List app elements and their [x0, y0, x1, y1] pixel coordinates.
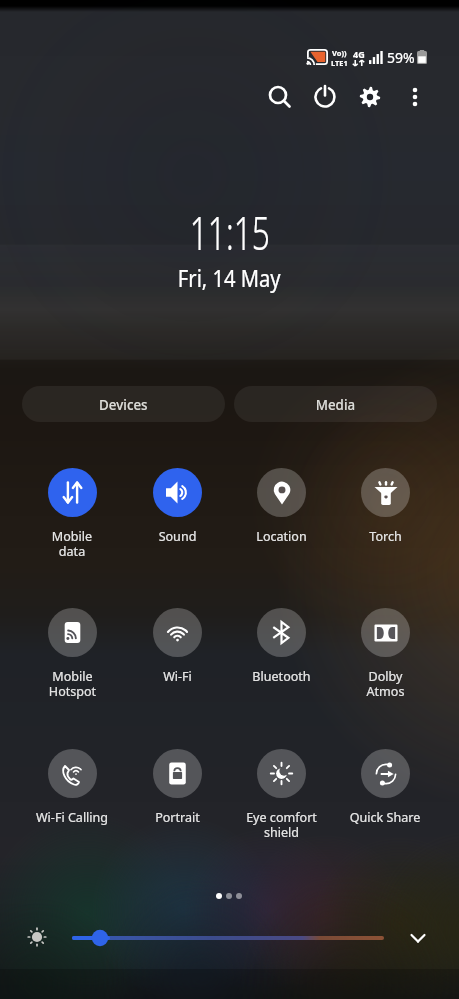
button[interactable]: More options — [395, 77, 435, 117]
staticText: Quick Share — [350, 808, 420, 826]
button[interactable]: Expand — [403, 923, 433, 953]
staticText: Wi-Fi Calling — [36, 808, 108, 826]
button[interactable]: Brightness slider — [68, 925, 388, 951]
staticText: Vo)) — [332, 48, 347, 58]
button[interactable]: Bluetooth — [229, 608, 333, 685]
button[interactable]: Torch — [333, 468, 437, 545]
button[interactable]: Eye comfort shield — [229, 749, 333, 842]
button[interactable]: Wi-Fi Calling — [20, 749, 124, 826]
button[interactable]: Brightness — [23, 923, 51, 951]
staticText: 59% — [387, 48, 415, 67]
button[interactable]: Portrait — [125, 749, 229, 826]
button[interactable]: Location — [229, 468, 333, 545]
staticText: Torch — [369, 527, 402, 545]
button[interactable]: Mobile Hotspot — [20, 608, 124, 701]
button[interactable]: Power off — [305, 77, 345, 117]
button[interactable]: Media — [234, 386, 437, 422]
staticText: 4G — [353, 48, 365, 60]
staticText: 11:15 — [190, 201, 270, 264]
staticText: Mobile Hotspot — [49, 668, 96, 700]
staticText: Bluetooth — [252, 667, 311, 685]
staticText: Portrait — [155, 808, 200, 826]
staticText: LTE1 — [331, 58, 348, 66]
staticText: Devices — [99, 394, 148, 414]
button[interactable]: Devices — [22, 386, 225, 422]
staticText: Fri, 14 May — [178, 261, 281, 293]
button[interactable]: Wi-Fi — [125, 608, 229, 685]
button[interactable]: Quick Share — [333, 749, 437, 826]
staticText: Eye comfort shield — [246, 809, 317, 841]
staticText: Wi-Fi — [163, 667, 192, 685]
staticText: Dolby Atmos — [366, 668, 404, 700]
button[interactable]: Search — [259, 76, 299, 116]
button[interactable]: Sound — [125, 468, 229, 545]
staticText: Media — [316, 394, 355, 414]
button[interactable]: Dolby Atmos — [333, 608, 437, 701]
staticText: Location — [256, 527, 307, 545]
button[interactable]: Settings — [350, 77, 390, 117]
staticText: Mobile data — [51, 528, 92, 560]
staticText: Sound — [158, 527, 196, 545]
button[interactable]: Mobile data — [20, 468, 124, 561]
